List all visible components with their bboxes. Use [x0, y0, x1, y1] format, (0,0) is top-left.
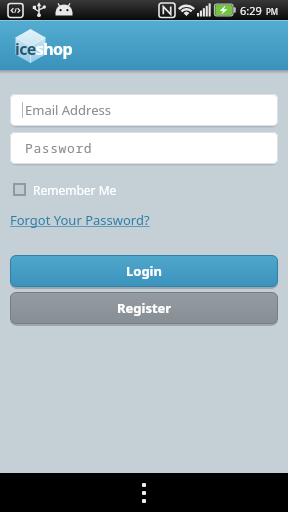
staticText: PM: [266, 6, 279, 17]
button[interactable]: Email Address: [10, 94, 278, 126]
staticText: 6:29: [240, 3, 262, 18]
button[interactable]: Register: [10, 292, 278, 324]
button[interactable]: Forgot Your Password?: [10, 211, 150, 229]
staticText: Email Address: [25, 101, 111, 119]
button[interactable]: Password: [10, 132, 278, 164]
button[interactable]: Login: [10, 255, 278, 287]
staticText: Password: [25, 139, 93, 157]
staticText: iceshop: [15, 38, 72, 60]
button[interactable]: [0, 473, 288, 512]
staticText: Login: [126, 262, 162, 280]
button[interactable]: Remember Me: [10, 182, 117, 196]
staticText: Register: [117, 299, 172, 317]
staticText: Remember Me: [33, 182, 117, 196]
